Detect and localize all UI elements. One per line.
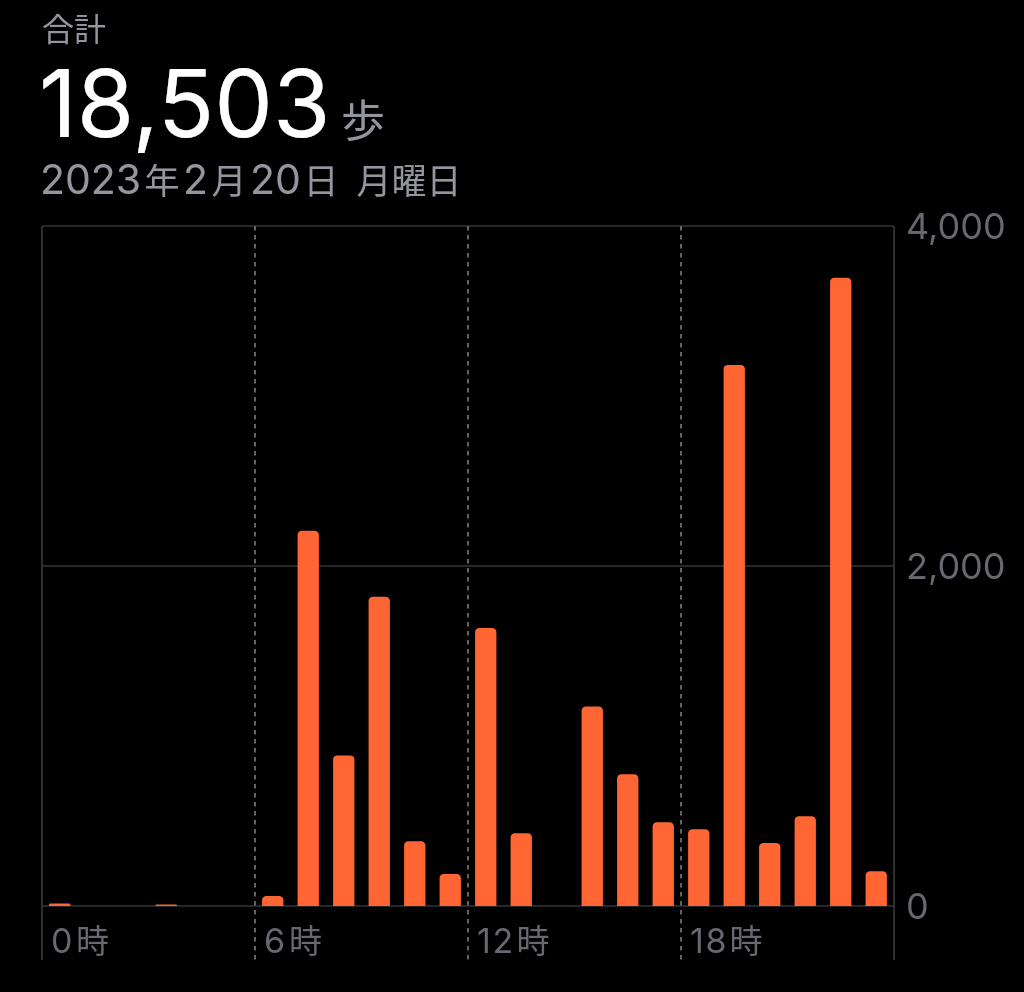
button[interactable]: 歩数グラフ 0時から24時 [0, 206, 1024, 992]
button[interactable]: 合計 18,503歩 2023年2月20日 月曜日 [0, 0, 1024, 206]
